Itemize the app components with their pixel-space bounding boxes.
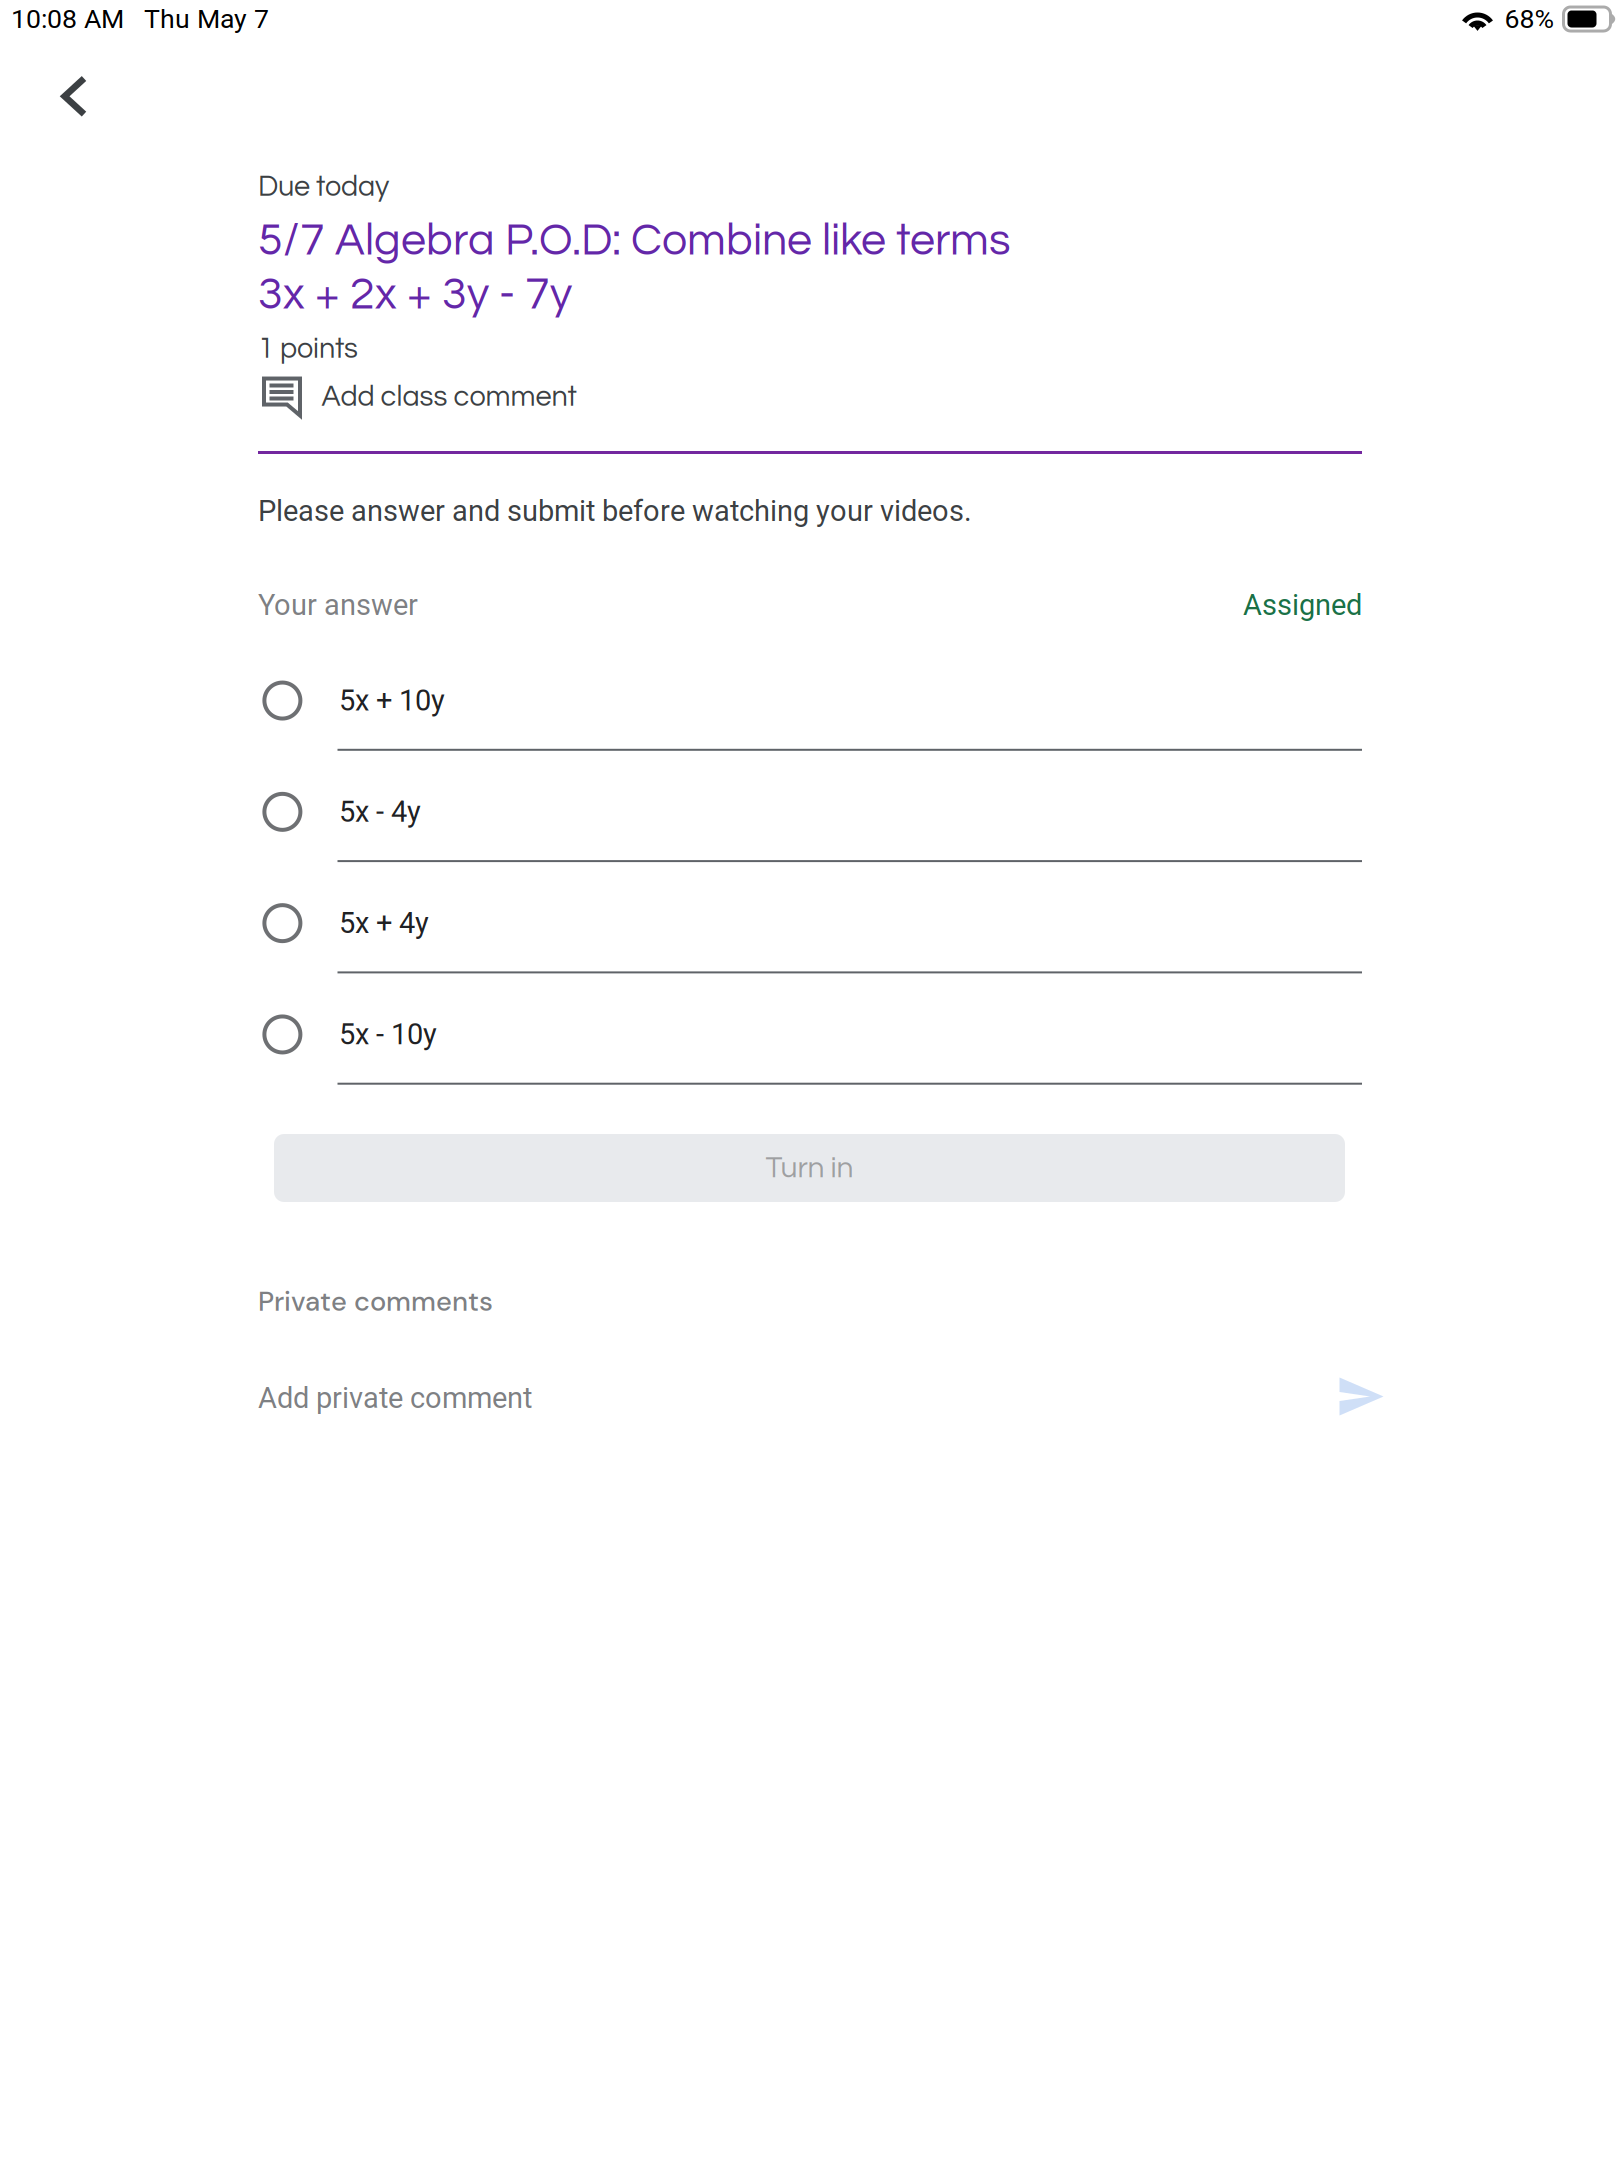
button[interactable]: Add class comment bbox=[258, 376, 1362, 418]
staticText: Your answer bbox=[258, 588, 418, 622]
button[interactable]: 5x + 4y bbox=[258, 875, 1362, 986]
staticText: 5x + 10y bbox=[339, 684, 445, 718]
staticText: Thu May 7 bbox=[144, 3, 269, 35]
staticText: Please answer and submit before watching… bbox=[258, 494, 972, 528]
button[interactable]: 5x - 10y bbox=[258, 986, 1362, 1097]
staticText: Assigned bbox=[1243, 588, 1362, 622]
staticText: 68% bbox=[1504, 3, 1554, 35]
button[interactable]: 5x - 4y bbox=[258, 764, 1362, 875]
staticText: Add private comment bbox=[258, 1381, 532, 1415]
button[interactable]: Turn in bbox=[274, 1134, 1345, 1202]
staticText: Due today bbox=[258, 172, 389, 202]
button[interactable]: Send bbox=[1339, 1377, 1384, 1416]
staticText: 1 points bbox=[258, 334, 358, 364]
staticText: 5x - 10y bbox=[339, 1017, 437, 1051]
staticText: 10:08 AM bbox=[11, 3, 124, 35]
staticText: 3x + 2x + 3y - 7y bbox=[258, 272, 572, 318]
staticText: 5x - 4y bbox=[339, 795, 421, 829]
staticText: Add class comment bbox=[321, 382, 576, 412]
staticText: Turn in bbox=[765, 1153, 853, 1183]
staticText: Private comments bbox=[258, 1284, 493, 1319]
staticText: 5/7 Algebra P.O.D: Combine like terms bbox=[258, 218, 1011, 264]
staticText: 5x + 4y bbox=[339, 906, 429, 940]
button[interactable]: Back bbox=[0, 38, 131, 137]
button[interactable]: 5x + 10y bbox=[258, 652, 1362, 764]
